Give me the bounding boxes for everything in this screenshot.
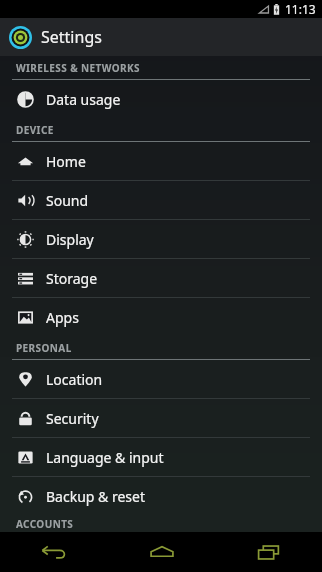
- staticText: Data usage: [46, 90, 121, 109]
- staticText: WIRELESS & NETWORKS: [16, 61, 140, 75]
- staticText: PERSONAL: [16, 341, 72, 355]
- staticText: Security: [46, 409, 99, 428]
- button[interactable]: Location: [0, 360, 322, 398]
- button[interactable]: Storage: [0, 259, 322, 297]
- staticText: Apps: [46, 308, 79, 327]
- button[interactable]: Recent apps: [215, 532, 322, 572]
- staticText: Backup & reset: [46, 487, 145, 506]
- staticText: Storage: [46, 269, 98, 288]
- staticText: Language & input: [46, 448, 164, 467]
- button[interactable]: Sound: [0, 181, 322, 219]
- staticText: Settings: [41, 26, 102, 48]
- staticText: 11:13: [285, 1, 316, 17]
- button[interactable]: Display: [0, 220, 322, 258]
- button[interactable]: Data usage: [0, 80, 322, 118]
- staticText: ACCOUNTS: [16, 517, 74, 531]
- button[interactable]: Home: [0, 142, 322, 180]
- staticText: Location: [46, 370, 103, 389]
- button[interactable]: Settings: [0, 18, 322, 56]
- button[interactable]: Security: [0, 399, 322, 437]
- button[interactable]: Back: [0, 532, 108, 572]
- staticText: DEVICE: [16, 123, 54, 137]
- button[interactable]: Language & input: [0, 438, 322, 476]
- button[interactable]: Backup & reset: [0, 477, 322, 515]
- staticText: Display: [46, 230, 94, 249]
- staticText: Sound: [46, 191, 89, 210]
- button[interactable]: Apps: [0, 298, 322, 336]
- staticText: Home: [46, 152, 86, 171]
- button[interactable]: Home: [108, 532, 215, 572]
